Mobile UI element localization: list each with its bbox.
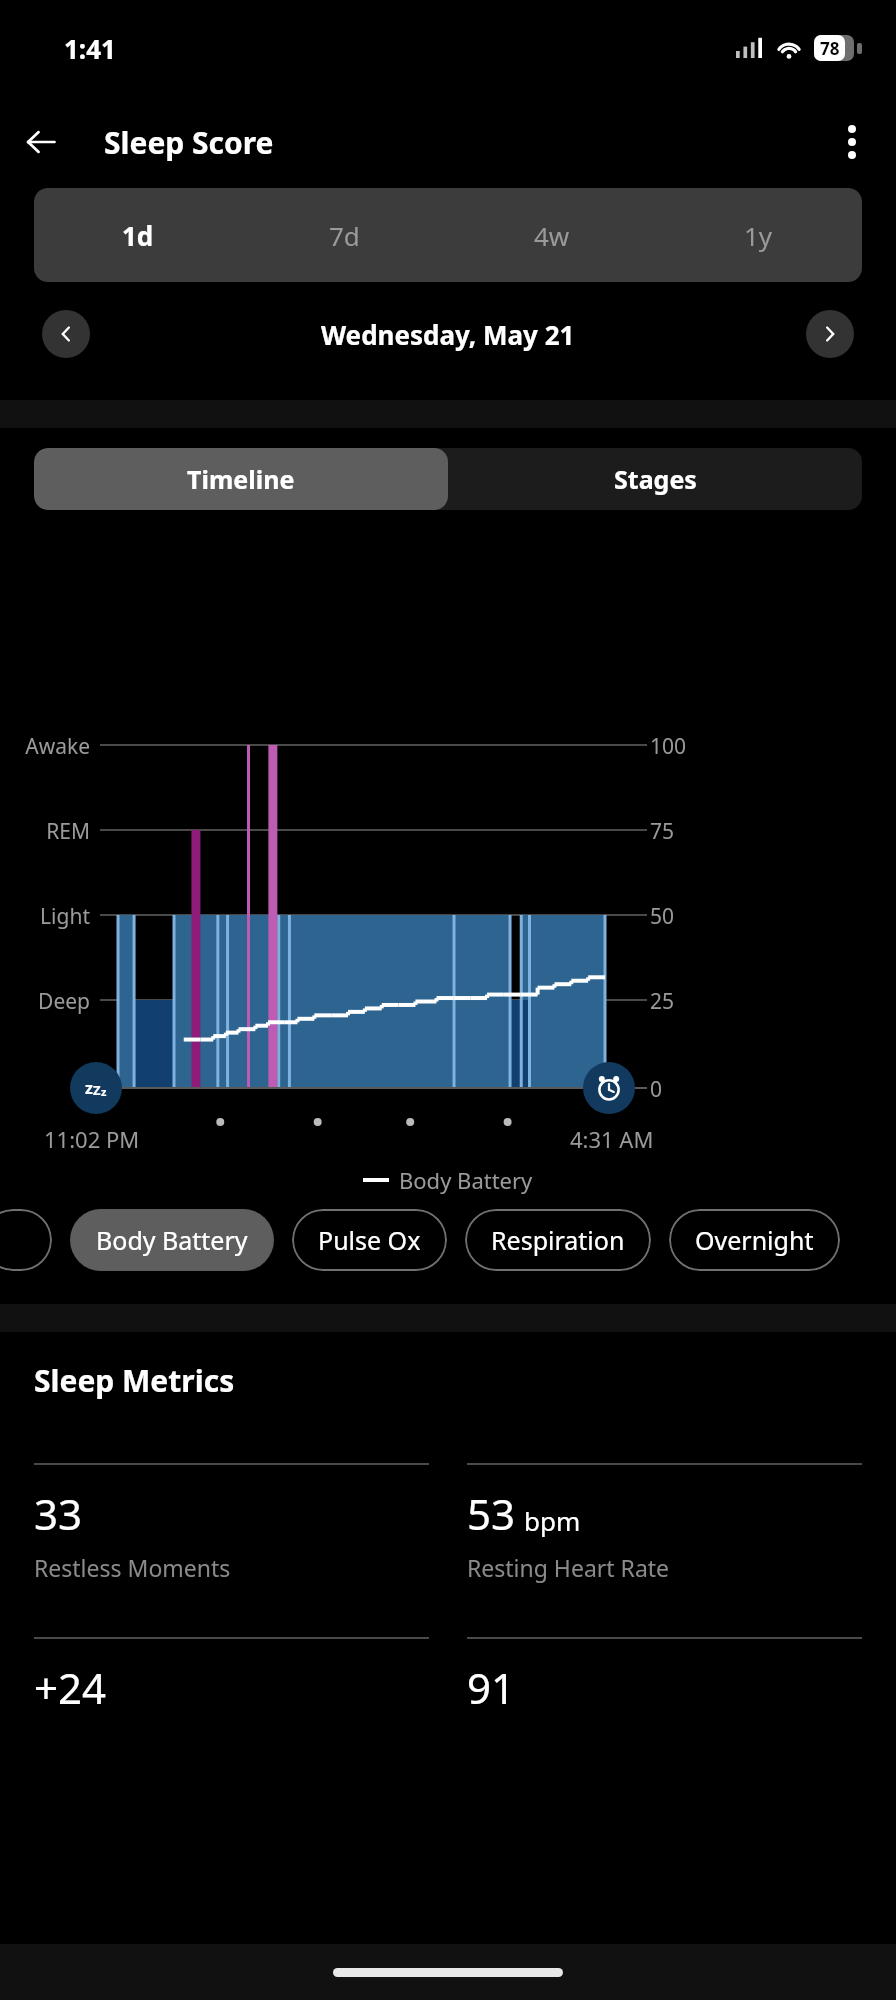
staticText: 75 — [650, 817, 675, 846]
button[interactable]: Previous day — [42, 310, 90, 358]
staticText: Overnight — [695, 1223, 814, 1257]
staticText: Respiration — [491, 1223, 625, 1257]
staticText: Awake — [0, 732, 90, 761]
button[interactable]: Body Battery — [70, 1209, 274, 1271]
button[interactable]: Stages — [448, 448, 862, 510]
staticText: 100 — [650, 732, 687, 761]
staticText: Body Battery — [96, 1223, 248, 1257]
button[interactable]: Pulse Ox — [292, 1209, 447, 1271]
staticText: z — [101, 1084, 107, 1099]
button[interactable] — [0, 1209, 52, 1271]
button[interactable]: Timeline — [34, 448, 448, 510]
staticText: 1d — [122, 218, 154, 253]
staticText: 0 — [650, 1075, 663, 1104]
staticText: 53 — [467, 1485, 516, 1542]
button[interactable]: 33 — [34, 1463, 429, 1583]
button[interactable]: Overnight — [669, 1209, 840, 1271]
button[interactable]: 4w — [448, 188, 655, 282]
staticText: 7d — [329, 218, 360, 253]
staticText: 91 — [467, 1659, 516, 1716]
staticText: 1:41 — [64, 31, 116, 66]
staticText: 1y — [744, 218, 773, 253]
button[interactable]: Next day — [806, 310, 854, 358]
staticText: Timeline — [187, 462, 295, 496]
button[interactable]: Alarm / wake time — [583, 1062, 635, 1114]
staticText: Restless Moments — [34, 1552, 231, 1583]
staticText: REM — [0, 817, 90, 846]
staticText: bpm — [524, 1503, 581, 1538]
button[interactable]: 53 — [467, 1463, 862, 1583]
staticText: Wednesday, May 21 — [321, 317, 575, 352]
button[interactable]: 91 — [467, 1637, 862, 1716]
button[interactable]: +24 — [34, 1637, 429, 1716]
staticText: Z — [93, 1081, 101, 1099]
staticText: 50 — [650, 902, 675, 931]
staticText: Light — [0, 902, 90, 931]
button[interactable]: Sleep start — [70, 1062, 122, 1114]
staticText: z — [85, 1077, 93, 1099]
button[interactable]: 1d — [34, 188, 241, 282]
staticText: 78 — [820, 37, 840, 60]
staticText: Pulse Ox — [318, 1223, 421, 1257]
staticText: Stages — [614, 462, 697, 496]
staticText: 11:02 PM — [44, 1124, 140, 1154]
staticText: Deep — [0, 987, 90, 1016]
button[interactable]: More options — [824, 114, 880, 170]
button[interactable]: 1y — [655, 188, 862, 282]
staticText: Resting Heart Rate — [467, 1552, 670, 1583]
button[interactable]: 7d — [241, 188, 448, 282]
button[interactable]: Respiration — [465, 1209, 651, 1271]
staticText: Body Battery — [399, 1165, 533, 1195]
staticText: Sleep Score — [104, 122, 274, 163]
staticText: 33 — [34, 1485, 83, 1542]
button[interactable]: Back — [14, 115, 68, 169]
staticText: 25 — [650, 987, 675, 1016]
staticText: 4w — [534, 218, 570, 253]
staticText: +24 — [34, 1659, 107, 1716]
staticText: 4:31 AM — [570, 1124, 654, 1154]
staticText: Sleep Metrics — [34, 1360, 235, 1401]
